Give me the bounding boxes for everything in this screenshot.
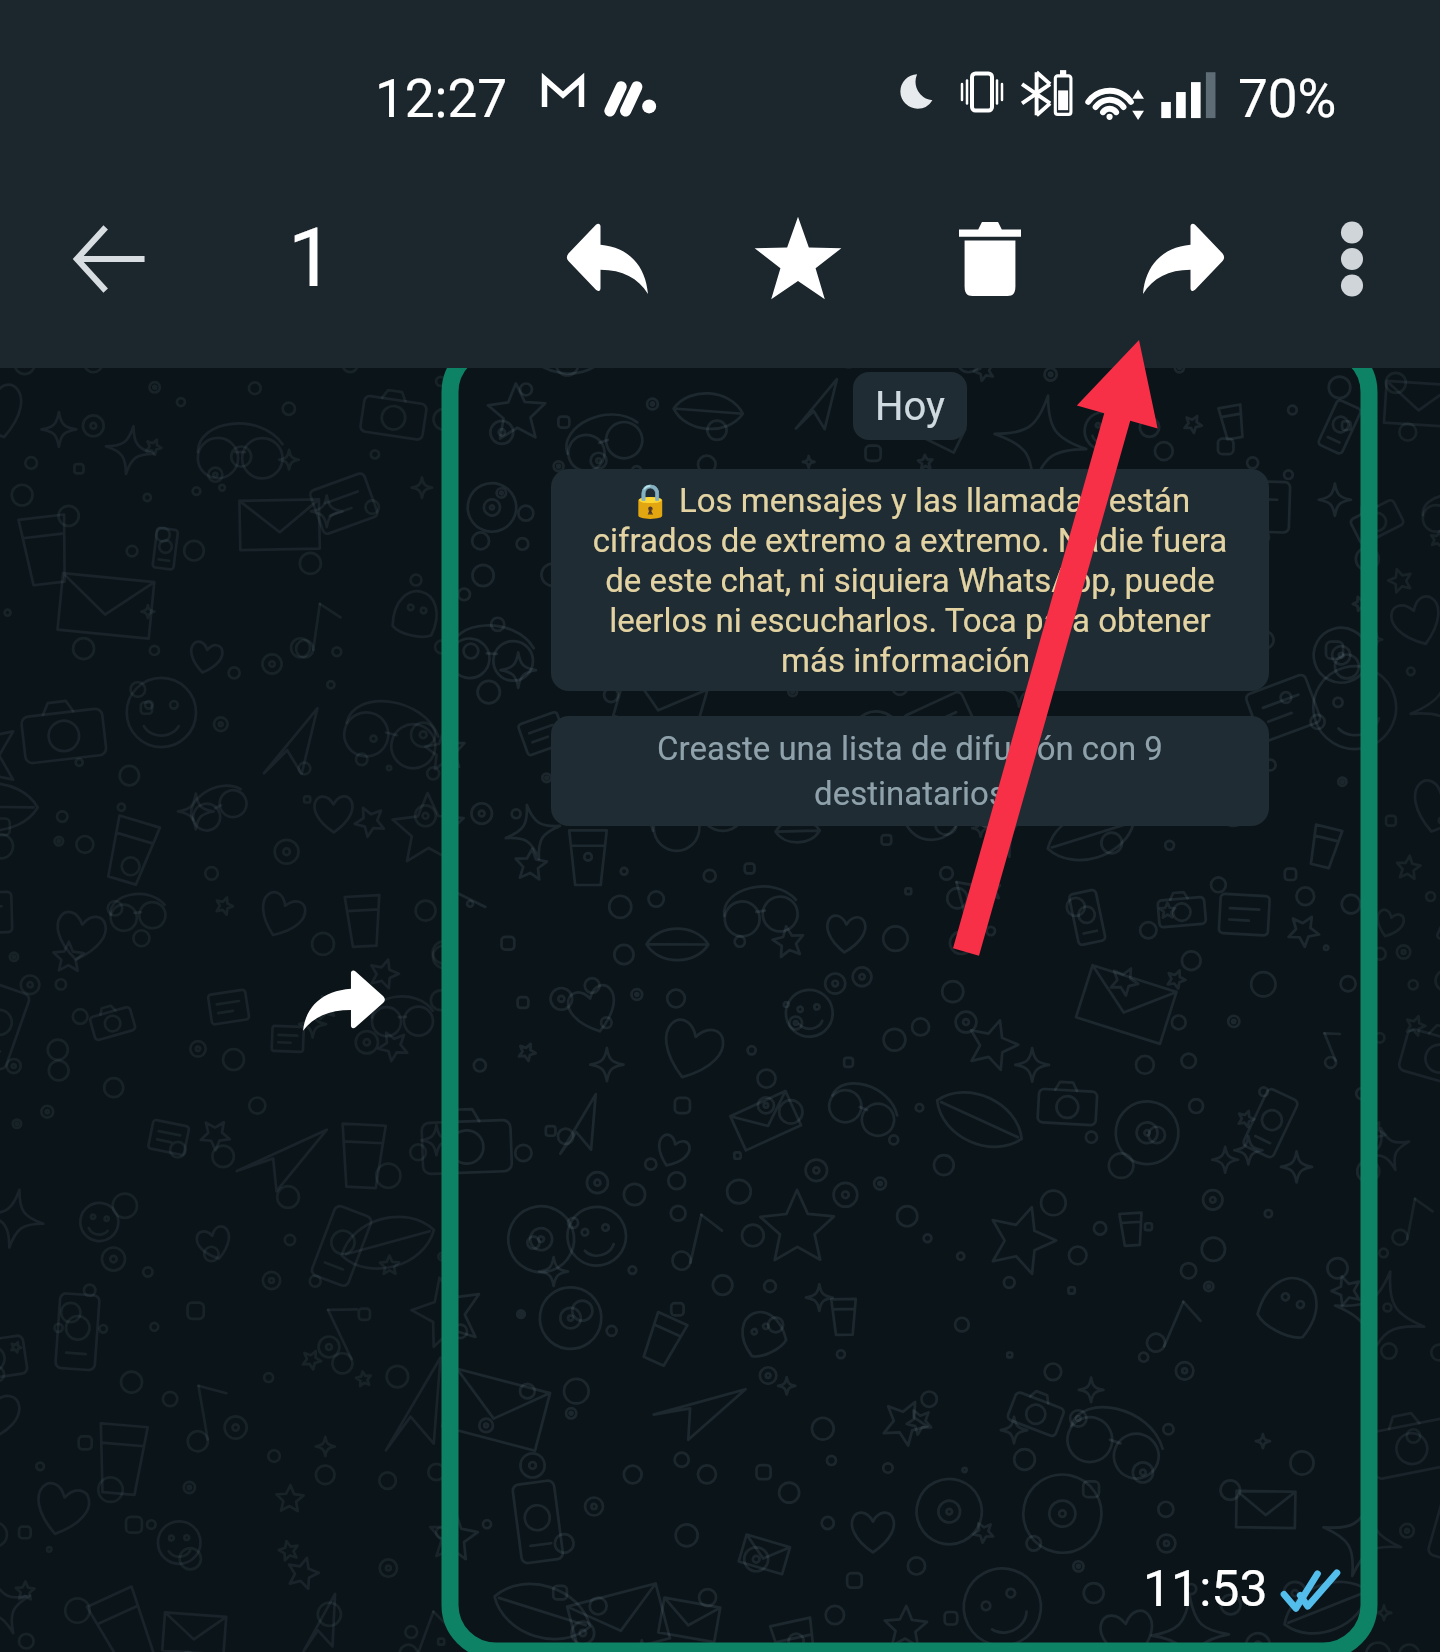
button[interactable]: Delete <box>914 166 1066 351</box>
staticText: 70% <box>1238 68 1337 130</box>
button[interactable]: Back <box>34 166 186 351</box>
button[interactable]: Creaste una lista de difusión con 9 dest… <box>551 716 1269 826</box>
button[interactable]: 🔒 Los mensajes y las llamadas están cifr… <box>551 469 1269 691</box>
staticText: Creaste una lista de difusión con 9 dest… <box>561 729 1259 813</box>
staticText: 12:27 <box>375 68 507 130</box>
button[interactable]: More options <box>1286 166 1418 351</box>
staticText: 11:53 <box>1143 1560 1268 1619</box>
staticText: 🔒 Los mensajes y las llamadas están cifr… <box>589 481 1231 680</box>
staticText: 1 <box>288 210 335 306</box>
button[interactable]: Hoy <box>853 372 967 440</box>
button[interactable]: Selected message <box>457 368 1362 1633</box>
button[interactable]: Reply <box>530 166 686 351</box>
button[interactable]: Star <box>722 166 874 351</box>
staticText: Hoy <box>875 383 945 430</box>
button[interactable]: Forward <box>1105 166 1261 351</box>
